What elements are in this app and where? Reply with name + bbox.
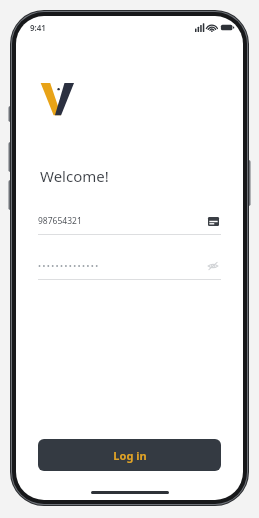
- button[interactable]: 987654321: [38, 212, 221, 235]
- button[interactable]: Show password: [205, 258, 221, 274]
- button[interactable]: Log in: [38, 439, 221, 471]
- staticText: 9:41: [30, 22, 46, 33]
- staticText: 987654321: [38, 215, 82, 227]
- button[interactable]: ID card: [205, 213, 221, 229]
- staticText: Log in: [113, 448, 147, 463]
- staticText: Welcome!: [40, 166, 109, 186]
- button[interactable]: Show password: [38, 257, 221, 280]
